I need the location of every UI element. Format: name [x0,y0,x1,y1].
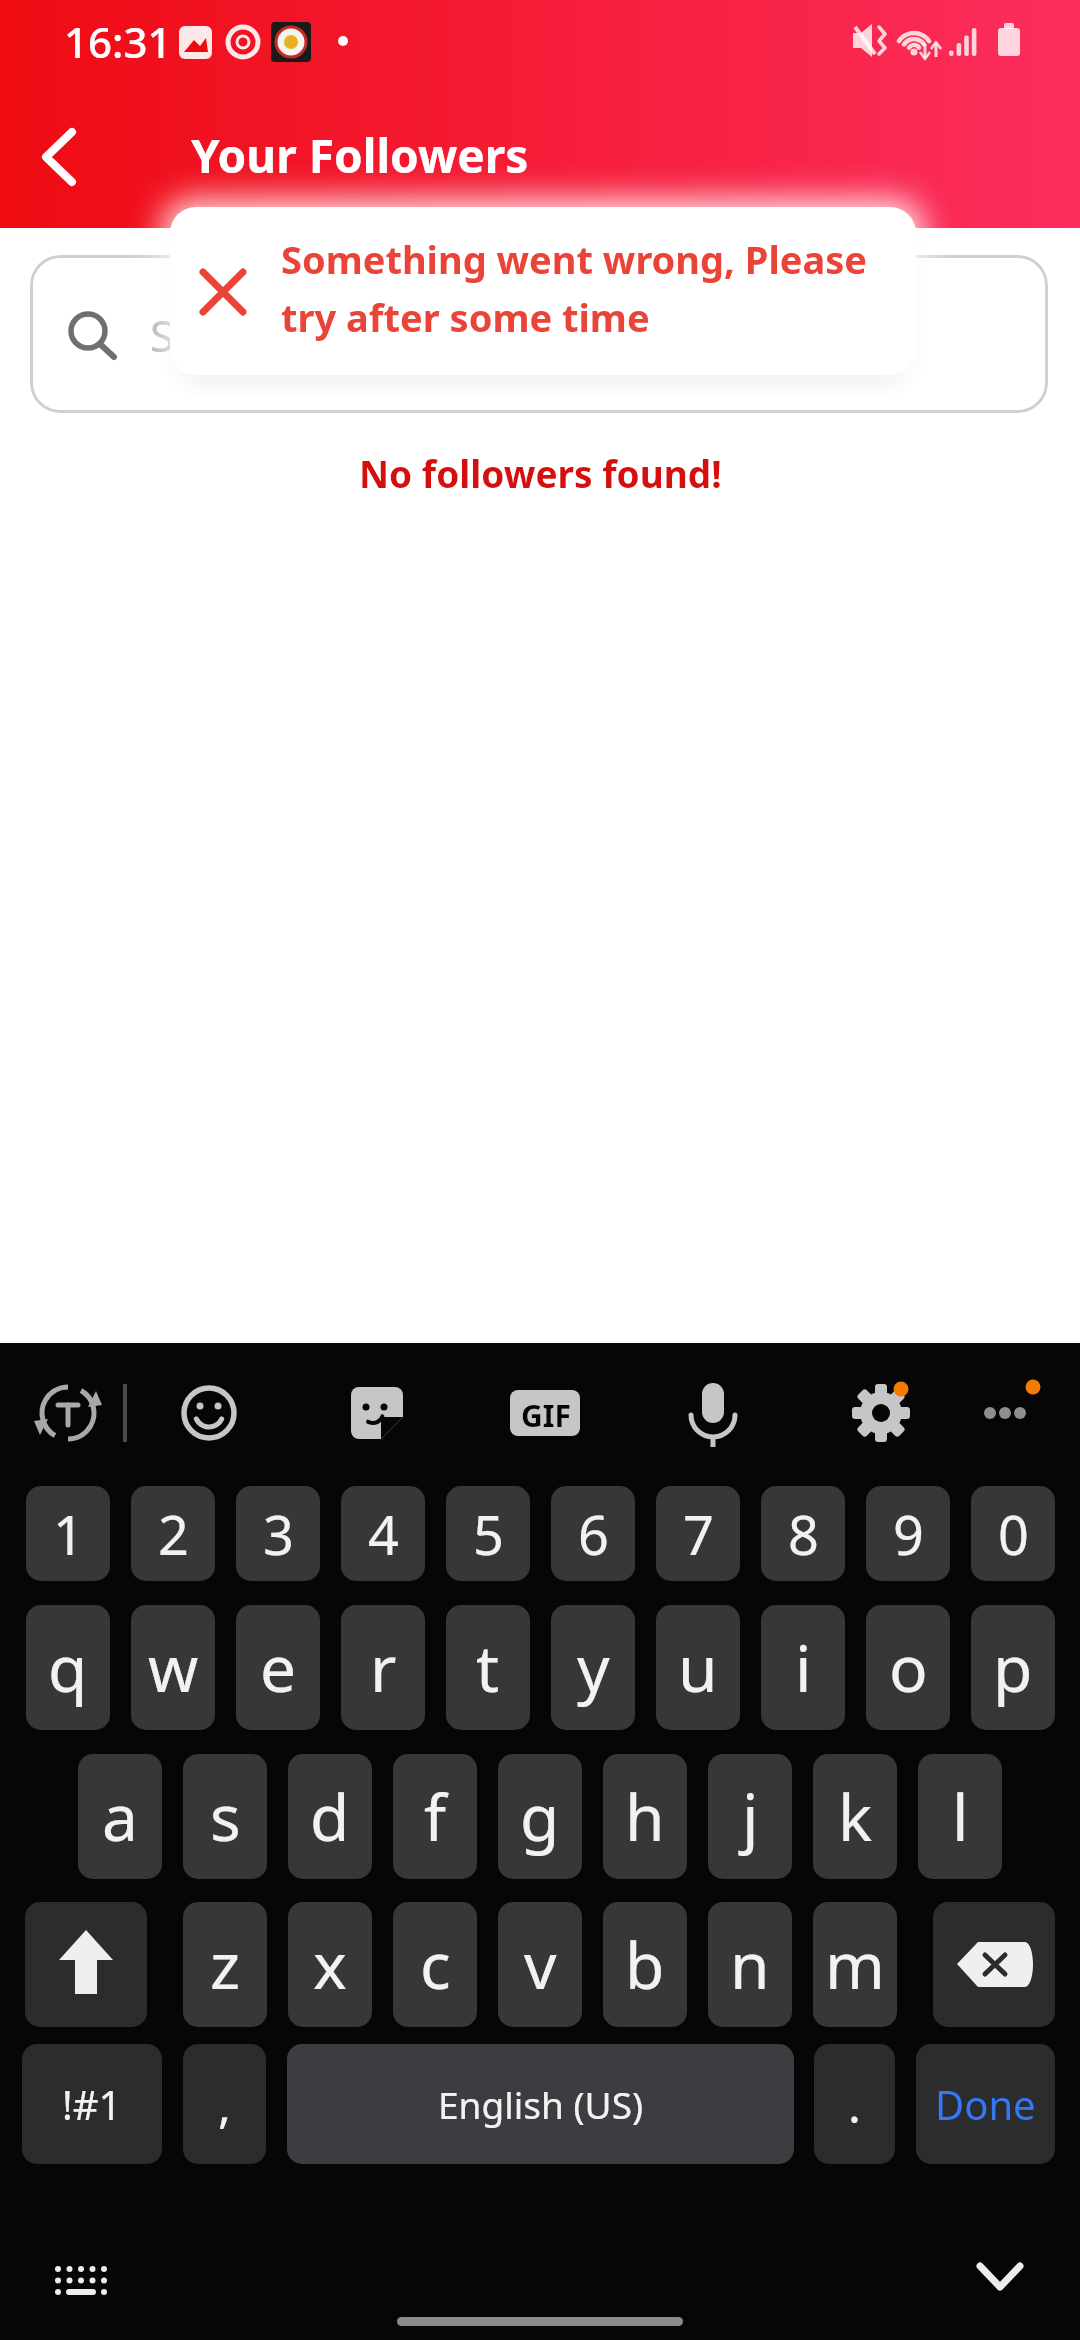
staticText: 1 [53,1497,84,1571]
button[interactable]: b [603,1902,687,2027]
staticText: . [848,2072,861,2137]
button[interactable]: j [708,1754,792,1879]
staticText: w [148,1624,199,1711]
button[interactable] [933,1902,1055,2027]
button[interactable]: v [498,1902,582,2027]
button[interactable] [28,118,96,194]
button[interactable]: Done [916,2044,1055,2164]
button[interactable] [668,1368,758,1458]
staticText: s [210,1773,241,1860]
button[interactable]: y [551,1605,635,1730]
button[interactable] [23,1368,113,1458]
staticText: b [625,1921,665,2008]
button[interactable]: o [866,1605,950,1730]
button[interactable]: !#1 [22,2044,162,2164]
staticText: 7 [683,1497,714,1571]
staticText: p [993,1624,1033,1711]
staticText: v [524,1921,557,2008]
button[interactable]: Search [30,255,1048,413]
staticText: 9 [893,1497,924,1571]
staticText: k [838,1773,873,1860]
button[interactable] [950,2233,1050,2313]
staticText: Your Followers [191,124,529,187]
button[interactable]: t [446,1605,530,1730]
button[interactable]: u [656,1605,740,1730]
staticText: c [420,1921,451,2008]
button[interactable]: 9 [866,1486,950,1581]
staticText: i [795,1624,812,1711]
button[interactable]: 7 [656,1486,740,1581]
button[interactable]: 8 [761,1486,845,1581]
staticText: 2 [158,1497,189,1571]
staticText: , [218,2072,231,2137]
staticText: n [730,1921,770,2008]
staticText: y [577,1624,610,1711]
staticText: x [313,1921,347,2008]
button[interactable]: d [288,1754,372,1879]
staticText: r [370,1624,397,1711]
button[interactable] [25,1902,147,2027]
button[interactable]: 5 [446,1486,530,1581]
staticText: 8 [788,1497,819,1571]
button[interactable]: 1 [26,1486,110,1581]
button[interactable]: . [814,2044,895,2164]
staticText: 16:31 [64,13,172,70]
staticText: Search [150,305,290,365]
button[interactable]: , [183,2044,266,2164]
staticText: 0 [998,1497,1029,1571]
button[interactable] [500,1368,590,1458]
staticText: English (US) [438,2079,644,2129]
staticText: e [260,1624,297,1711]
button[interactable]: a [78,1754,162,1879]
button[interactable]: Something went wrong, Please try after s… [170,207,916,375]
staticText: f [424,1773,447,1860]
staticText: GIF [521,1395,571,1436]
button[interactable]: x [288,1902,372,2027]
staticText: g [520,1773,560,1860]
button[interactable]: 6 [551,1486,635,1581]
staticText: 4 [368,1497,399,1571]
button[interactable]: k [813,1754,897,1879]
button[interactable]: g [498,1754,582,1879]
button[interactable] [30,2233,130,2313]
staticText: h [625,1773,665,1860]
button[interactable] [960,1368,1050,1458]
button[interactable]: e [236,1605,320,1730]
staticText: m [825,1921,885,2008]
button[interactable] [836,1368,926,1458]
staticText: Something went wrong, Please try after s… [281,233,867,343]
button[interactable]: z [183,1902,267,2027]
button[interactable]: 2 [131,1486,215,1581]
staticText: u [678,1624,718,1711]
staticText: 3 [263,1497,294,1571]
button[interactable]: 4 [341,1486,425,1581]
button[interactable]: r [341,1605,425,1730]
staticText: q [48,1624,88,1711]
staticText: No followers found! [359,448,722,498]
staticText: 5 [473,1497,504,1571]
button[interactable]: c [393,1902,477,2027]
button[interactable]: l [918,1754,1002,1879]
button[interactable]: h [603,1754,687,1879]
staticText: 6 [578,1497,609,1571]
staticText: Done [935,2077,1036,2131]
staticText: l [952,1773,969,1860]
staticText: z [210,1921,241,2008]
staticText: o [889,1624,928,1711]
button[interactable]: q [26,1605,110,1730]
button[interactable]: 3 [236,1486,320,1581]
button[interactable]: i [761,1605,845,1730]
button[interactable]: w [131,1605,215,1730]
button[interactable]: m [813,1902,897,2027]
button[interactable]: p [971,1605,1055,1730]
button[interactable]: English (US) [287,2044,794,2164]
staticText: j [742,1773,759,1860]
staticText: d [310,1773,350,1860]
button[interactable]: f [393,1754,477,1879]
staticText: !#1 [62,2077,122,2131]
button[interactable]: s [183,1754,267,1879]
button[interactable]: 0 [971,1486,1055,1581]
button[interactable] [332,1368,422,1458]
button[interactable]: n [708,1902,792,2027]
button[interactable] [164,1368,254,1458]
